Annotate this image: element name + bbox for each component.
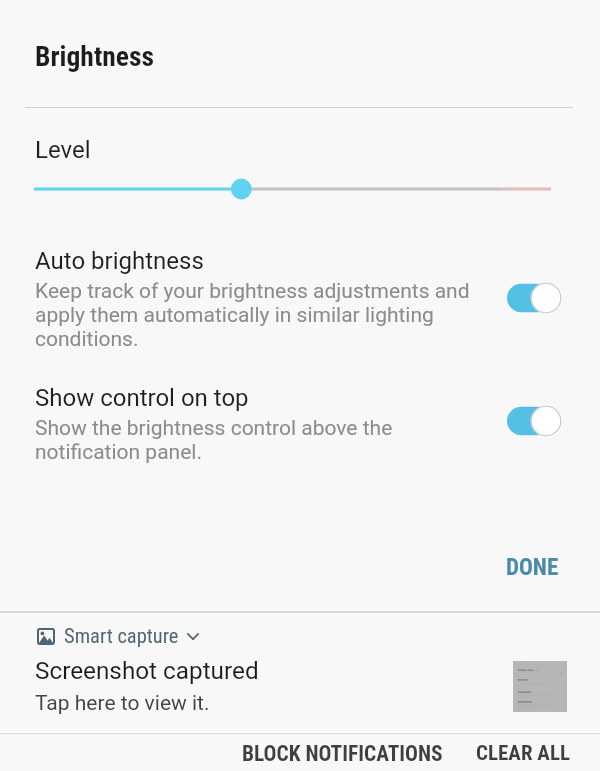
staticText: Show the brightness control above the no… <box>35 416 393 464</box>
staticText: DONE <box>506 554 559 581</box>
staticText: Screenshot captured <box>35 656 259 684</box>
staticText: CLEAR ALL <box>476 741 570 766</box>
staticText: Keep track of your brightness adjustment… <box>35 279 470 351</box>
button[interactable]: BLOCK NOTIFICATIONS <box>226 733 459 771</box>
button[interactable]: Show control on top toggle <box>507 399 565 443</box>
staticText: Auto brightness <box>35 247 204 275</box>
button[interactable]: Screenshot captured <box>0 648 600 722</box>
staticText: Brightness <box>35 40 155 72</box>
button[interactable]: DONE <box>482 544 583 591</box>
staticText: BLOCK NOTIFICATIONS <box>242 741 443 766</box>
staticText: Show control on top <box>35 384 249 412</box>
button[interactable]: Smart capture <box>31 620 205 652</box>
button[interactable]: Brightness level slider <box>0 167 600 207</box>
staticText: Smart capture <box>64 624 179 648</box>
staticText: Level <box>35 136 91 164</box>
button[interactable]: Auto brightness toggle <box>507 276 565 320</box>
button[interactable]: CLEAR ALL <box>460 733 586 771</box>
staticText: Tap here to view it. <box>35 691 210 716</box>
